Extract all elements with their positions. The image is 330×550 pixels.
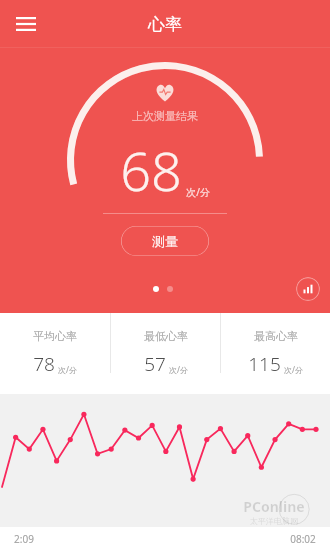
staticText: 次/分 <box>284 364 303 375</box>
staticText: 上次测量结果 <box>132 109 198 123</box>
staticText: 最低心率 <box>144 329 188 343</box>
button[interactable]: 测量 <box>121 226 209 256</box>
staticText: 平均心率 <box>33 329 77 343</box>
staticText: 次/分 <box>186 185 210 199</box>
button[interactable]: 平均心率 <box>0 313 110 377</box>
staticText: 08:02 <box>290 532 316 546</box>
staticText: 68 <box>120 133 182 207</box>
button[interactable]: Menu <box>8 6 44 42</box>
staticText: 测量 <box>152 233 178 249</box>
staticText: PConline <box>243 497 305 516</box>
staticText: 57 <box>144 351 166 377</box>
button[interactable]: Page 1 <box>153 286 159 292</box>
staticText: 2:09 <box>14 532 34 546</box>
staticText: 心率 <box>148 14 182 35</box>
staticText: 次/分 <box>169 364 188 375</box>
button[interactable]: Statistics <box>296 277 320 301</box>
button[interactable]: 最高心率 <box>221 313 330 377</box>
staticText: 115 <box>248 351 281 377</box>
button[interactable]: Page 2 <box>167 286 173 292</box>
button[interactable]: 最低心率 <box>111 313 220 377</box>
staticText: 78 <box>33 351 55 377</box>
staticText: 最高心率 <box>254 329 298 343</box>
staticText: 太平洋电脑网 <box>250 516 298 526</box>
staticText: 次/分 <box>58 364 77 375</box>
